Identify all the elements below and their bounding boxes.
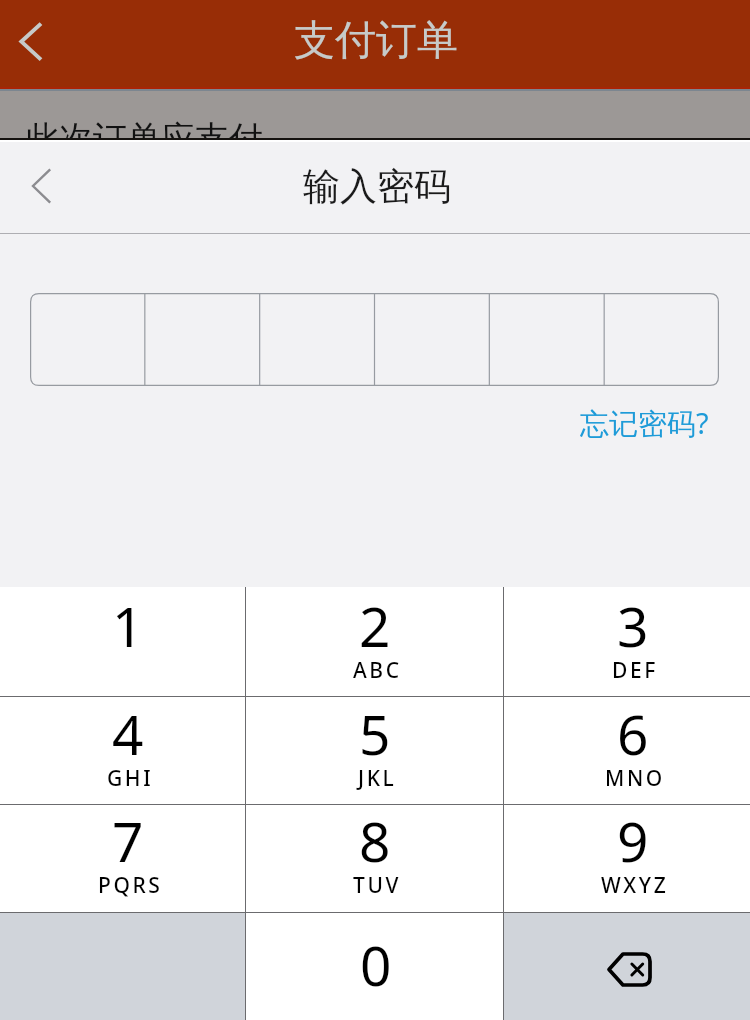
button[interactable]: Password digit 2 (144, 293, 259, 386)
staticText: 3 (617, 588, 649, 663)
button[interactable]: Password digit 5 (489, 293, 604, 386)
button[interactable]: Password digit 3 (259, 293, 374, 386)
staticText: 输入密码 (303, 163, 451, 210)
button[interactable]: 忘记密码? (560, 395, 720, 451)
staticText: 2 (359, 588, 391, 663)
staticText: 7 (112, 803, 144, 878)
button[interactable]: Password digit 1 (30, 293, 144, 386)
staticText: 支付订单 (294, 15, 458, 67)
button[interactable]: Backspace (504, 913, 750, 1020)
button[interactable]: Password digit 4 (374, 293, 489, 386)
button[interactable]: 4 (0, 697, 245, 804)
button[interactable]: Back (0, 0, 72, 87)
staticText: MNO (605, 764, 665, 793)
button[interactable]: 1 (0, 587, 245, 696)
button[interactable]: Back (0, 142, 88, 233)
button[interactable]: 9 (504, 805, 750, 912)
button[interactable]: 8 (246, 805, 503, 912)
staticText: 8 (359, 803, 391, 878)
button[interactable]: 7 (0, 805, 245, 912)
button[interactable]: 5 (246, 697, 503, 804)
button[interactable]: Password digit 6 (604, 293, 719, 386)
staticText: WXYZ (601, 871, 669, 900)
staticText: PQRS (98, 871, 163, 900)
staticText: 1 (112, 588, 144, 663)
staticText: JKL (358, 764, 397, 793)
staticText: 5 (359, 696, 391, 771)
staticText: 6 (617, 696, 649, 771)
button[interactable]: 2 (246, 587, 503, 696)
button[interactable]: 6 (504, 697, 750, 804)
staticText: 4 (112, 696, 144, 771)
button[interactable]: 3 (504, 587, 750, 696)
staticText: 0 (360, 927, 392, 1002)
staticText: GHI (107, 764, 154, 793)
button[interactable]: 0 (246, 913, 503, 1020)
staticText: ABC (353, 656, 402, 685)
staticText: 此次订单应支付 (25, 117, 263, 160)
staticText: 9 (617, 803, 649, 878)
staticText: 忘记密码? (580, 403, 709, 443)
staticText: TUV (353, 871, 402, 900)
staticText: DEF (612, 656, 658, 685)
